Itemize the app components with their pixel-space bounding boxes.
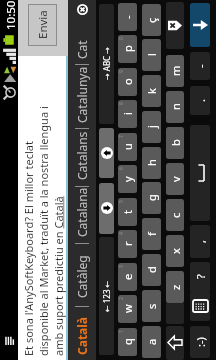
staticText: , xyxy=(193,240,208,243)
staticText: u xyxy=(120,143,135,150)
button[interactable]: Catalunya xyxy=(68,66,96,123)
staticText: k xyxy=(144,88,159,94)
button[interactable]: g xyxy=(142,182,161,214)
staticText: x xyxy=(168,248,183,254)
button[interactable]: Shift xyxy=(166,326,184,360)
button[interactable]: Enter xyxy=(190,3,210,47)
button[interactable]: Cat xyxy=(68,40,96,59)
staticText: d xyxy=(144,266,159,273)
button[interactable]: Move down xyxy=(99,183,114,234)
staticText: . xyxy=(193,99,208,102)
button[interactable]: c xyxy=(166,199,184,231)
staticText: Catalana xyxy=(74,187,90,237)
staticText: e xyxy=(120,273,135,280)
button[interactable]: 6 xyxy=(118,165,137,193)
staticText: p xyxy=(120,45,135,52)
button[interactable]: 9 xyxy=(118,68,137,96)
staticText: 9 xyxy=(118,70,125,73)
button[interactable]: Hide suggestions xyxy=(77,4,88,15)
staticText: 7 xyxy=(118,135,125,138)
staticText: h xyxy=(144,159,159,166)
button[interactable]: j xyxy=(142,111,161,143)
staticText: Catàleg xyxy=(74,255,90,298)
button[interactable]: , xyxy=(190,225,210,258)
button[interactable]: Catàleg xyxy=(68,255,96,298)
staticText: i xyxy=(120,112,135,115)
button[interactable]: 5 xyxy=(118,198,137,226)
staticText: r xyxy=(120,241,135,246)
staticText: f xyxy=(144,232,159,236)
button[interactable]: 4 xyxy=(118,230,137,258)
staticText: m xyxy=(168,65,183,76)
button[interactable]: 0 xyxy=(118,35,137,63)
button[interactable]: - xyxy=(190,52,210,80)
button[interactable]: v xyxy=(166,163,184,195)
button[interactable]: l xyxy=(142,39,161,71)
button[interactable]: n xyxy=(166,91,184,123)
button[interactable]: a xyxy=(142,326,161,358)
staticText: Et sona l'AnySoftKeyboard? El millor tec… xyxy=(21,141,36,356)
staticText: Envia xyxy=(35,10,51,39)
staticText: s xyxy=(144,303,159,309)
staticText: Cat xyxy=(74,40,90,59)
staticText: 10:50 xyxy=(3,0,19,30)
staticText: j xyxy=(144,125,159,128)
button[interactable]: Català xyxy=(68,316,96,355)
button[interactable]: - xyxy=(118,3,137,31)
staticText: ? xyxy=(193,274,208,279)
button[interactable]: Symbols xyxy=(166,302,184,324)
staticText: disponible al Market, traduït a la nostr… xyxy=(36,106,51,356)
button[interactable]: Delete xyxy=(166,2,184,49)
staticText: n xyxy=(168,103,183,110)
staticText: Catalans xyxy=(74,131,90,180)
button[interactable]: → ABC → xyxy=(99,4,114,124)
button[interactable]: 7 xyxy=(118,133,137,161)
staticText: y xyxy=(120,176,135,182)
button[interactable]: Space xyxy=(190,125,210,221)
staticText: Catalunya xyxy=(74,66,90,123)
button[interactable]: ? xyxy=(190,262,210,292)
button[interactable]: x xyxy=(166,235,184,267)
staticText: 2 xyxy=(118,297,125,300)
button[interactable]: s xyxy=(142,290,161,322)
button[interactable]: ç xyxy=(142,4,161,36)
button[interactable]: m xyxy=(166,55,184,87)
button[interactable]: . xyxy=(190,86,210,115)
button[interactable]: ← 123 ← xyxy=(99,237,114,355)
staticText: 5 xyxy=(118,200,125,203)
button[interactable]: f xyxy=(142,218,161,250)
staticText: c xyxy=(168,212,183,218)
staticText: b xyxy=(168,139,183,146)
button[interactable]: 2 xyxy=(118,295,137,323)
staticText: 6 xyxy=(118,167,125,170)
staticText: :-) xyxy=(193,337,208,347)
button[interactable]: k xyxy=(142,75,161,107)
button[interactable]: Catalans xyxy=(68,131,96,180)
button[interactable]: 1 xyxy=(118,328,137,356)
staticText: ç xyxy=(144,17,159,23)
button[interactable]: Move up xyxy=(99,128,114,178)
staticText: g xyxy=(144,194,159,201)
staticText: - xyxy=(120,15,135,19)
button[interactable]: d xyxy=(142,254,161,286)
staticText: o xyxy=(120,78,135,85)
button[interactable]: h xyxy=(142,147,161,179)
staticText: 1 xyxy=(118,330,125,333)
staticText: t xyxy=(120,210,135,214)
staticText: 4 xyxy=(118,232,125,235)
button[interactable]: Envia xyxy=(29,5,56,45)
button[interactable]: :-) xyxy=(190,326,210,358)
staticText: a xyxy=(144,338,159,345)
staticText: z xyxy=(168,284,183,290)
staticText: → ABC → xyxy=(101,47,112,80)
staticText: ← 123 ← xyxy=(101,280,112,312)
button[interactable]: Keyboard settings xyxy=(190,291,210,321)
staticText: 8 xyxy=(118,102,125,105)
staticText: w xyxy=(120,304,135,313)
staticText: 3 xyxy=(118,265,125,268)
button[interactable]: Catalana xyxy=(68,187,96,237)
button[interactable]: 3 xyxy=(118,263,137,291)
button[interactable]: 8 xyxy=(118,100,137,128)
button[interactable]: z xyxy=(166,271,184,303)
button[interactable]: b xyxy=(166,127,184,159)
